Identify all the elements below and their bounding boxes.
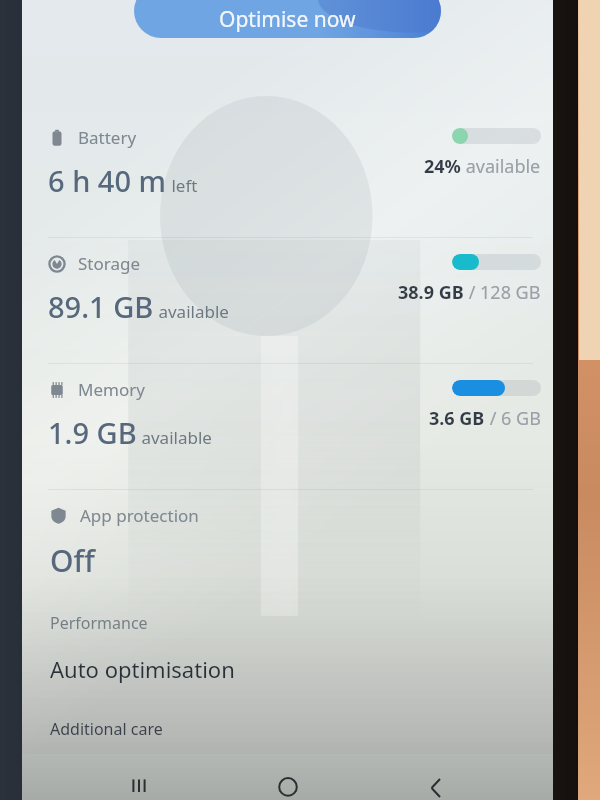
staticText: 3.6 GB	[429, 406, 485, 431]
staticText: Additional care	[50, 718, 163, 740]
staticText: / 128 GB	[464, 280, 541, 305]
staticText: 24%	[424, 154, 461, 179]
staticText: available	[154, 300, 229, 323]
button[interactable]: Auto optimisation	[22, 634, 553, 704]
staticText: available	[137, 426, 212, 449]
staticText: Battery	[78, 126, 137, 149]
staticText: App protection	[80, 504, 199, 527]
button[interactable]: Optimise now	[134, 0, 441, 38]
staticText: Auto optimisation	[50, 654, 235, 684]
staticText: 6 h 40 m	[48, 161, 167, 200]
button[interactable]: Back	[404, 754, 468, 800]
staticText: left	[167, 174, 198, 197]
staticText: Performance	[50, 612, 148, 634]
button[interactable]: Battery	[22, 112, 553, 237]
button[interactable]: Recent apps	[107, 754, 171, 800]
staticText: 1.9 GB	[48, 413, 137, 452]
staticText: Storage	[78, 252, 141, 275]
staticText: available	[461, 154, 541, 179]
button[interactable]: Home	[256, 754, 320, 800]
button[interactable]: App protection	[22, 490, 553, 608]
staticText: 89.1 GB	[48, 287, 154, 326]
button[interactable]: Storage	[22, 238, 553, 363]
staticText: / 6 GB	[485, 406, 541, 431]
staticText: Optimise now	[219, 5, 356, 34]
staticText: Memory	[78, 378, 145, 401]
button[interactable]: Memory	[22, 364, 553, 489]
staticText: Off	[50, 540, 95, 581]
staticText: 38.9 GB	[398, 280, 464, 305]
